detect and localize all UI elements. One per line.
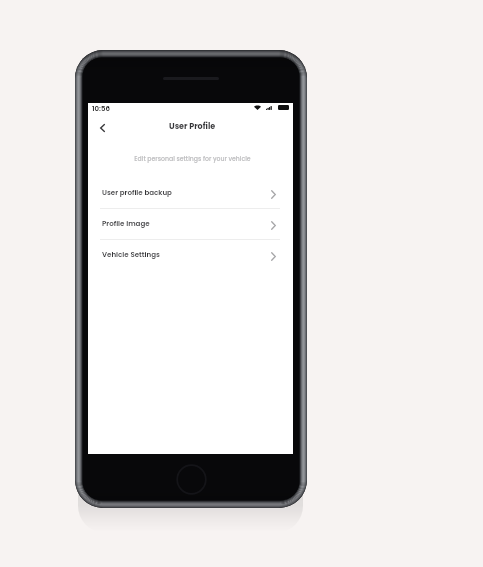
button[interactable]: User profile backup [88,178,293,208]
staticText: Vehicle Settings [102,250,160,260]
staticText: User profile backup [102,188,172,198]
button[interactable]: Back [94,120,108,134]
staticText: 10:56 [92,104,110,114]
button[interactable]: Profile image [88,209,293,239]
staticText: Edit personal settings for your vehicle [90,154,295,163]
staticText: User Profile [169,121,216,132]
staticText: Profile image [102,219,150,229]
button[interactable]: Vehicle Settings [88,240,293,270]
